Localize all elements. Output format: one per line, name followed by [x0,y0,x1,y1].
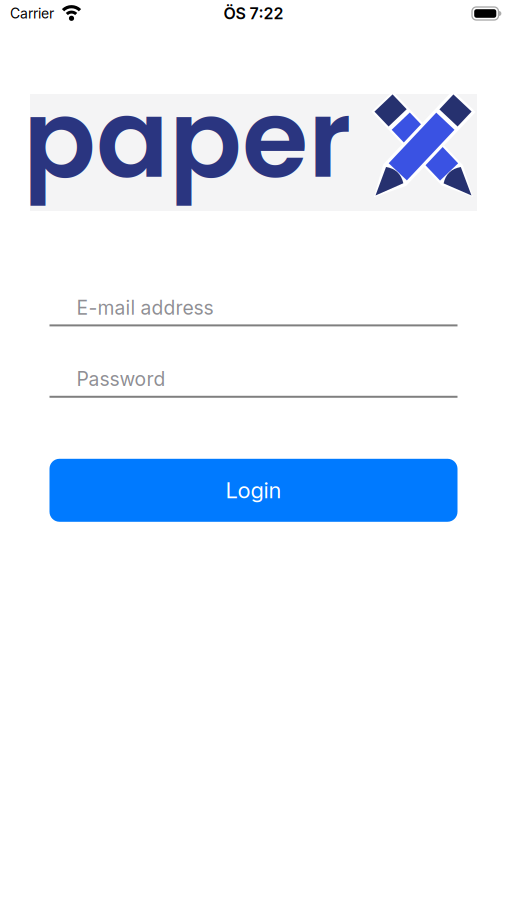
button[interactable]: Login [49,459,457,522]
staticText: E-mail address [76,296,213,319]
staticText: paper [23,64,351,214]
staticText: Password [76,367,165,391]
button[interactable]: E-mail address [49,296,457,326]
staticText: ÖS 7:22 [223,4,283,23]
staticText: Login [225,477,281,504]
button[interactable]: Password [49,367,457,398]
staticText: Carrier [10,5,54,22]
